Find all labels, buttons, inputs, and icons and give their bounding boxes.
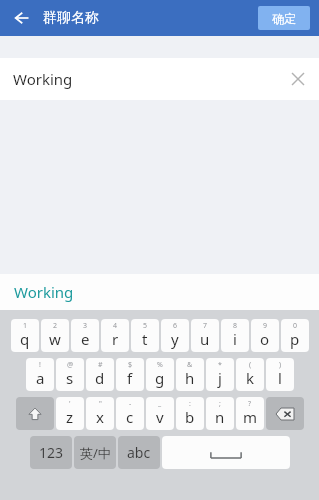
button[interactable]: abc [118, 436, 160, 469]
staticText: ( [249, 360, 252, 370]
button[interactable]: 2 [41, 319, 69, 352]
staticText: & [187, 360, 193, 370]
staticText: y [171, 329, 179, 349]
button[interactable]: 确定 [258, 6, 310, 30]
button[interactable]: 1 [11, 319, 39, 352]
button[interactable]: 123 [30, 436, 72, 469]
button[interactable]: Space [162, 436, 290, 469]
staticText: q [20, 329, 30, 349]
staticText: k [246, 368, 255, 388]
staticText: v [156, 407, 164, 427]
staticText: 2 [53, 321, 58, 331]
staticText: Working [14, 282, 74, 302]
staticText: ; [219, 399, 221, 409]
staticText: abc [127, 443, 151, 462]
button[interactable]: Working [0, 58, 319, 100]
button[interactable]: @ [56, 358, 84, 391]
button[interactable]: 4 [101, 319, 129, 352]
staticText: f [127, 368, 133, 388]
staticText: 0 [293, 321, 298, 331]
staticText: o [260, 329, 270, 349]
button[interactable]: # [86, 358, 114, 391]
staticText: 7 [203, 321, 208, 331]
staticText: t [142, 329, 148, 349]
button[interactable]: " [86, 397, 114, 430]
button[interactable]: Working [0, 274, 319, 310]
staticText: 4 [113, 321, 118, 331]
staticText: 6 [173, 321, 178, 331]
button[interactable]: ' [56, 397, 84, 430]
button[interactable]: * [206, 358, 234, 391]
staticText: 确定 [272, 11, 296, 26]
staticText: e [81, 329, 90, 349]
button[interactable]: ! [26, 358, 54, 391]
button[interactable]: - [116, 397, 144, 430]
staticText: j [218, 368, 222, 388]
staticText: h [185, 368, 195, 388]
staticText: 123 [39, 443, 64, 462]
staticText: $ [128, 360, 133, 370]
button[interactable]: 0 [281, 319, 309, 352]
button[interactable]: ( [236, 358, 264, 391]
staticText: @ [67, 360, 74, 370]
staticText: s [66, 368, 74, 388]
staticText: : [189, 399, 191, 409]
button[interactable]: 6 [161, 319, 189, 352]
button[interactable]: ? [236, 397, 264, 430]
staticText: 3 [83, 321, 88, 331]
staticText: 群聊名称 [43, 9, 99, 27]
staticText: ! [39, 360, 41, 370]
button[interactable]: 5 [131, 319, 159, 352]
staticText: w [49, 329, 61, 349]
button[interactable]: $ [116, 358, 144, 391]
staticText: r [112, 329, 119, 349]
staticText: 8 [233, 321, 238, 331]
staticText: l [278, 368, 282, 388]
button[interactable]: & [176, 358, 204, 391]
button[interactable]: % [146, 358, 174, 391]
staticText: 5 [143, 321, 148, 331]
staticText: " [99, 399, 102, 409]
staticText: ) [279, 360, 282, 370]
staticText: 英/中 [80, 444, 111, 462]
staticText: a [36, 368, 45, 388]
staticText: 9 [263, 321, 268, 331]
staticText: n [215, 407, 225, 427]
staticText: g [155, 368, 165, 388]
staticText: z [66, 407, 74, 427]
button[interactable]: 8 [221, 319, 249, 352]
button[interactable]: 3 [71, 319, 99, 352]
button[interactable]: 9 [251, 319, 279, 352]
staticText: b [185, 407, 195, 427]
button[interactable]: 英/中 [74, 436, 116, 469]
button[interactable]: : [176, 397, 204, 430]
staticText: - [129, 399, 132, 409]
staticText: # [98, 360, 103, 370]
staticText: ? [248, 399, 252, 409]
staticText: ' [69, 399, 71, 409]
button[interactable]: Shift [16, 397, 54, 430]
button[interactable]: Backspace [266, 397, 304, 430]
button[interactable]: _ [146, 397, 174, 430]
staticText: p [290, 329, 300, 349]
staticText: Working [13, 69, 73, 89]
staticText: * [218, 360, 222, 370]
staticText: x [96, 407, 104, 427]
staticText: _ [158, 399, 162, 409]
staticText: d [95, 368, 105, 388]
button[interactable]: ) [266, 358, 294, 391]
staticText: 1 [23, 321, 28, 331]
button[interactable]: ; [206, 397, 234, 430]
staticText: i [233, 329, 237, 349]
staticText: m [243, 407, 258, 427]
button[interactable]: Clear text [285, 66, 311, 92]
staticText: % [157, 360, 163, 370]
button[interactable]: Back [7, 4, 35, 32]
staticText: u [200, 329, 210, 349]
staticText: c [126, 407, 134, 427]
button[interactable]: 7 [191, 319, 219, 352]
